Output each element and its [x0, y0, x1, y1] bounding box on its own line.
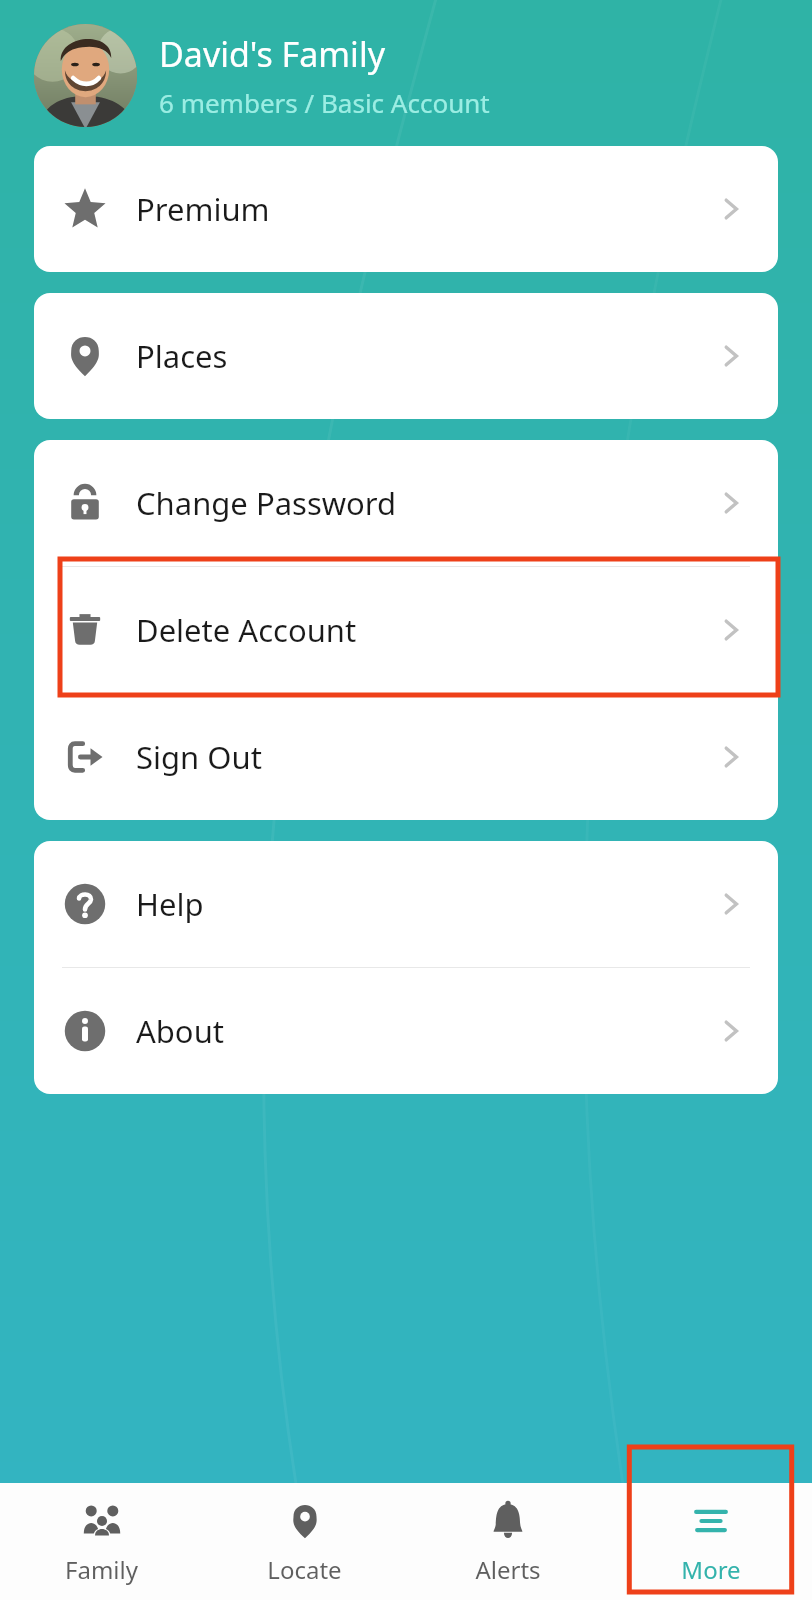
button[interactable]: More: [609, 1483, 812, 1600]
staticText: Alerts: [475, 1553, 541, 1586]
staticText: Sign Out: [136, 736, 262, 778]
button[interactable]: Family: [0, 1483, 203, 1600]
button[interactable]: Premium: [34, 146, 778, 272]
staticText: About: [136, 1010, 224, 1052]
staticText: David's Family: [159, 31, 385, 77]
button[interactable]: Sign Out: [34, 694, 778, 820]
button[interactable]: Change Password: [34, 440, 778, 566]
button[interactable]: About: [34, 968, 778, 1094]
button[interactable]: David's Family: [34, 24, 812, 127]
button[interactable]: Places: [34, 293, 778, 419]
button[interactable]: Delete Account: [34, 567, 778, 693]
staticText: Places: [136, 335, 228, 377]
staticText: Help: [136, 883, 204, 925]
button[interactable]: Locate: [203, 1483, 406, 1600]
staticText: Premium: [136, 188, 270, 230]
staticText: 6 members / Basic Account: [159, 85, 490, 120]
staticText: More: [681, 1553, 741, 1586]
staticText: Change Password: [136, 482, 397, 524]
staticText: Family: [65, 1553, 138, 1586]
staticText: Delete Account: [136, 609, 357, 651]
staticText: Locate: [267, 1553, 342, 1586]
button[interactable]: Help: [34, 841, 778, 967]
button[interactable]: Alerts: [406, 1483, 609, 1600]
